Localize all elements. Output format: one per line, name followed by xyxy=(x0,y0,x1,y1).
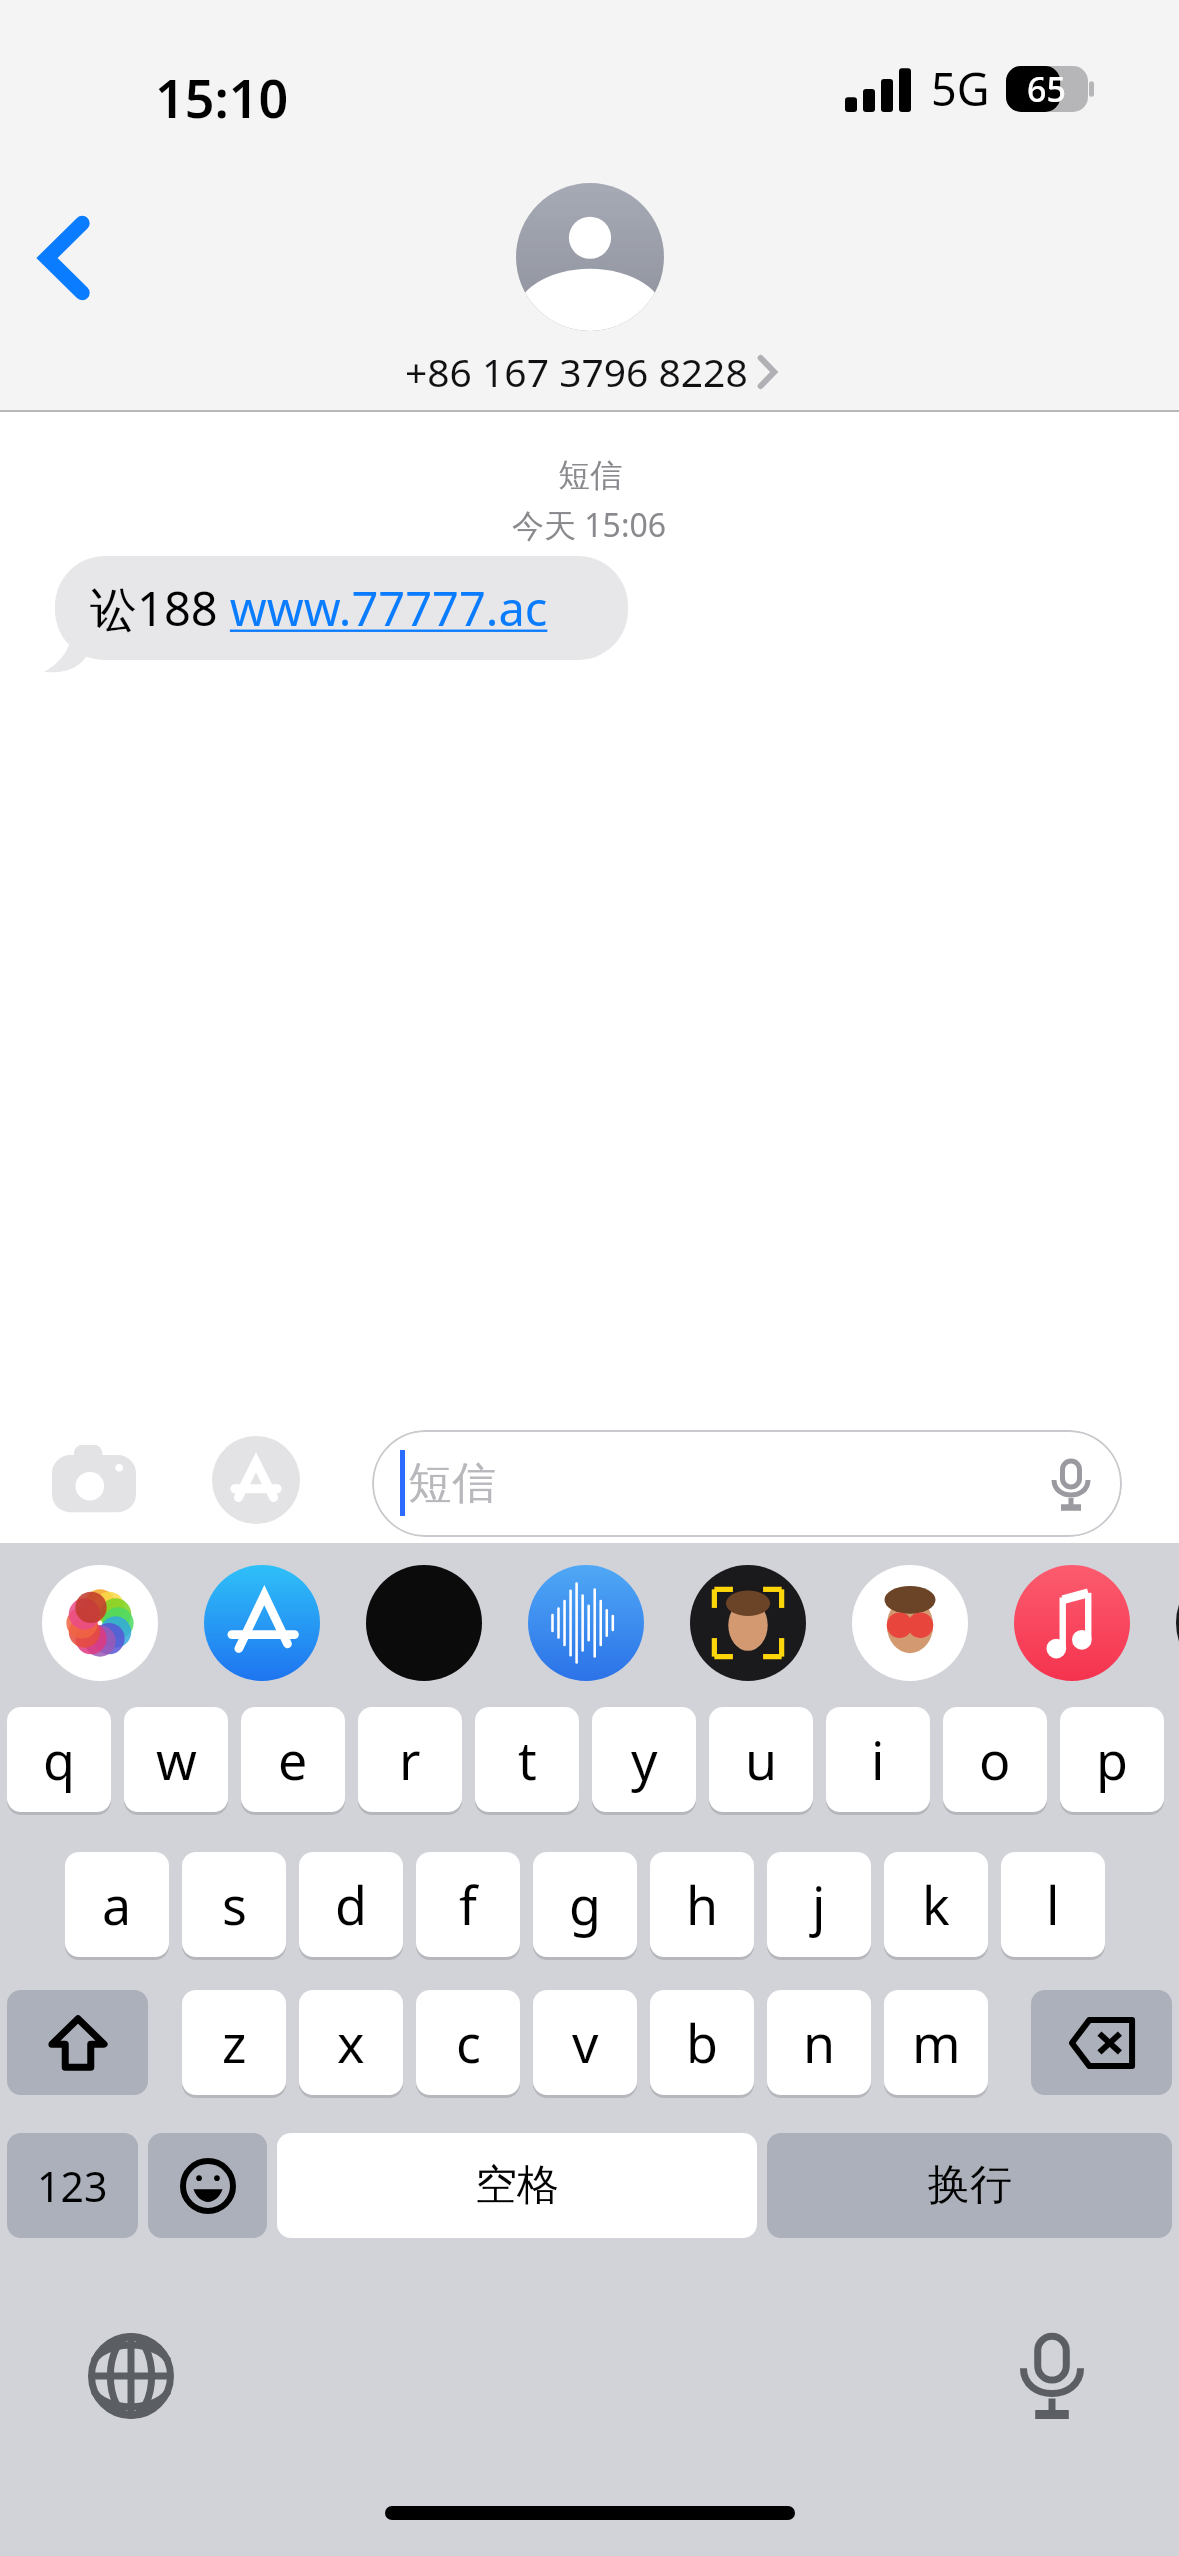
staticText: b xyxy=(686,2007,718,2078)
staticText: 123 xyxy=(37,2158,108,2214)
staticText: 5G xyxy=(931,58,990,119)
button[interactable]: i xyxy=(826,1707,930,1812)
staticText: m xyxy=(912,2007,961,2078)
button[interactable]: Audio xyxy=(528,1565,644,1681)
button[interactable]: App Store xyxy=(212,1436,300,1524)
staticText: j xyxy=(812,1869,826,1940)
button[interactable]: Music xyxy=(1014,1565,1130,1681)
button[interactable]: Shift xyxy=(7,1990,148,2095)
button[interactable]: Apple Cash xyxy=(366,1565,482,1681)
button[interactable]: s xyxy=(182,1852,286,1957)
staticText: f xyxy=(459,1869,477,1940)
staticText: 短信 xyxy=(408,1456,496,1511)
button[interactable]: Memoji Stickers xyxy=(852,1565,968,1681)
button[interactable]: 短信 xyxy=(372,1430,1122,1537)
button[interactable]: j xyxy=(767,1852,871,1957)
staticText: y xyxy=(631,1724,658,1795)
button[interactable]: More xyxy=(1176,1565,1179,1681)
staticText: 今天 15:06 xyxy=(512,503,667,547)
button[interactable]: g xyxy=(533,1852,637,1957)
staticText: 短信 xyxy=(558,455,622,495)
button[interactable]: o xyxy=(943,1707,1047,1812)
staticText: g xyxy=(569,1869,601,1940)
staticText: 空格 xyxy=(475,2159,559,2212)
button[interactable]: n xyxy=(767,1990,871,2095)
button[interactable]: k xyxy=(884,1852,988,1957)
staticText: n xyxy=(803,2007,836,2078)
staticText: v xyxy=(572,2007,599,2078)
button[interactable]: r xyxy=(358,1707,462,1812)
staticText: k xyxy=(922,1869,950,1940)
staticText: 15:10 xyxy=(155,62,289,133)
button[interactable]: q xyxy=(7,1707,111,1812)
button[interactable]: p xyxy=(1060,1707,1164,1812)
button[interactable]: 换行 xyxy=(767,2133,1172,2238)
button[interactable]: Backspace xyxy=(1031,1990,1172,2095)
button[interactable]: e xyxy=(241,1707,345,1812)
button[interactable]: w xyxy=(124,1707,228,1812)
staticText: 65 xyxy=(1027,66,1066,112)
button[interactable]: b xyxy=(650,1990,754,2095)
staticText: t xyxy=(518,1724,537,1795)
button[interactable]: v xyxy=(533,1990,637,2095)
staticText: u xyxy=(745,1724,778,1795)
button[interactable]: Dictation xyxy=(1046,1459,1096,1509)
button[interactable]: t xyxy=(475,1707,579,1812)
button[interactable]: +86 167 3796 8228 xyxy=(330,183,850,398)
button[interactable]: x xyxy=(299,1990,403,2095)
button[interactable]: l xyxy=(1001,1852,1105,1957)
button[interactable]: c xyxy=(416,1990,520,2095)
button[interactable]: Next keyboard xyxy=(88,2333,174,2419)
staticText: h xyxy=(686,1869,719,1940)
button[interactable]: d xyxy=(299,1852,403,1957)
staticText: w xyxy=(156,1724,197,1795)
staticText: c xyxy=(456,2007,481,2078)
staticText: e xyxy=(278,1724,308,1795)
staticText: r xyxy=(399,1724,421,1795)
button[interactable]: y xyxy=(592,1707,696,1812)
button[interactable]: Memoji xyxy=(690,1565,806,1681)
button[interactable]: Photos xyxy=(42,1565,158,1681)
button[interactable]: z xyxy=(182,1990,286,2095)
button[interactable]: Numbers xyxy=(7,2133,138,2238)
staticText: d xyxy=(335,1869,367,1940)
staticText: z xyxy=(222,2007,247,2078)
staticText: i xyxy=(871,1724,885,1795)
staticText: +86 167 3796 8228 xyxy=(405,345,748,398)
staticText: p xyxy=(1096,1724,1128,1795)
staticText: q xyxy=(43,1724,75,1795)
button[interactable]: Camera xyxy=(52,1440,136,1524)
button[interactable]: u xyxy=(709,1707,813,1812)
staticText: x xyxy=(337,2007,365,2078)
staticText: a xyxy=(102,1869,132,1940)
staticText: l xyxy=(1046,1869,1060,1940)
button[interactable]: Back xyxy=(14,196,124,320)
staticText: 换行 xyxy=(928,2159,1012,2212)
button[interactable]: a xyxy=(65,1852,169,1957)
button[interactable]: m xyxy=(884,1990,988,2095)
staticText: s xyxy=(222,1869,247,1940)
button[interactable]: f xyxy=(416,1852,520,1957)
button[interactable]: App Store xyxy=(204,1565,320,1681)
button[interactable]: h xyxy=(650,1852,754,1957)
button[interactable]: Emoji xyxy=(148,2133,267,2238)
staticText: o xyxy=(979,1724,1011,1795)
staticText: 讼188 www.77777.ac xyxy=(90,576,548,640)
button[interactable]: 空格 xyxy=(277,2133,757,2238)
button[interactable]: Dictation xyxy=(1010,2333,1094,2417)
